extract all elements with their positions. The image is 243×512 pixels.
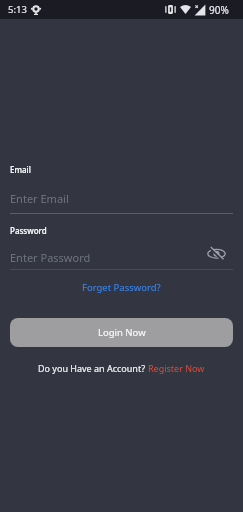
staticText: Login Now bbox=[98, 326, 146, 339]
button[interactable]: Do you Have an Account? bbox=[10, 362, 233, 374]
staticText: Enter Email bbox=[10, 191, 69, 206]
button[interactable]: Login Now bbox=[10, 318, 233, 347]
staticText: Email bbox=[10, 164, 31, 175]
button[interactable]: Forget Password? bbox=[82, 281, 161, 294]
staticText: 90% bbox=[209, 3, 229, 17]
staticText: Password bbox=[10, 225, 47, 236]
staticText: Enter Password bbox=[10, 250, 207, 265]
button[interactable] bbox=[207, 247, 226, 261]
staticText: 5:13 bbox=[8, 3, 27, 16]
staticText: Register Now bbox=[148, 362, 205, 374]
staticText: Do you Have an Account? bbox=[38, 362, 148, 374]
